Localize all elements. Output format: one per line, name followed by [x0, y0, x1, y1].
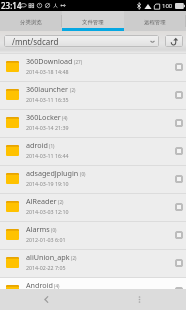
button[interactable]: adroid: [0, 137, 186, 165]
staticText: 360launcher: [26, 84, 69, 94]
button[interactable]: Alarms: [0, 221, 186, 249]
staticText: (27): [74, 59, 83, 65]
button[interactable]: adsagedJplugin: [0, 165, 186, 193]
staticText: 23:14: [1, 0, 22, 11]
staticText: (0): [80, 171, 86, 177]
staticText: (0): [51, 227, 57, 233]
button[interactable]: 分类浏览: [0, 11, 62, 31]
staticText: AlReader: [26, 196, 57, 206]
button[interactable]: Select adsagedJplugin: [170, 170, 186, 188]
staticText: /mnt/sdcard: [12, 36, 59, 47]
staticText: 文件管理: [82, 19, 104, 26]
button[interactable]: /mnt/sdcard: [4, 35, 159, 47]
staticText: 2014-03-03 12:10: [26, 208, 69, 215]
staticText: Alarms: [26, 224, 50, 234]
staticText: (4): [54, 283, 60, 289]
button[interactable]: 文件管理: [62, 11, 124, 31]
staticText: (2): [58, 199, 64, 205]
staticText: (2): [71, 255, 77, 261]
button[interactable]: Android: [0, 277, 186, 289]
button[interactable]: AlReader: [0, 193, 186, 221]
staticText: adsagedJplugin: [26, 168, 79, 178]
staticText: 2014-02-22 7:05: [26, 264, 66, 271]
button[interactable]: 360Locker: [0, 109, 186, 137]
staticText: (2): [70, 87, 76, 93]
button[interactable]: Up one level: [165, 35, 183, 47]
staticText: 360Locker: [26, 112, 61, 122]
button[interactable]: 360Download: [0, 53, 186, 81]
staticText: 2014-03-18 14:48: [26, 68, 69, 75]
staticText: 2014-03-11 16:44: [26, 152, 69, 159]
button[interactable]: 远程管理: [124, 11, 186, 31]
button[interactable]: Select Android: [170, 282, 186, 289]
staticText: 2014-03-14 21:39: [26, 124, 69, 131]
staticText: 2014-03-19 19:10: [26, 180, 69, 187]
button[interactable]: Select aliUnion_apk: [170, 254, 186, 272]
button[interactable]: aliUnion_apk: [0, 249, 186, 277]
staticText: adroid: [26, 140, 48, 150]
button[interactable]: Select 360Download: [170, 58, 186, 76]
button[interactable]: 360launcher: [0, 81, 186, 109]
staticText: (4): [62, 115, 68, 121]
button[interactable]: Back: [0, 289, 93, 310]
button[interactable]: Select 360launcher: [170, 86, 186, 104]
staticText: 2012-01-03 6:01: [26, 236, 66, 243]
staticText: 远程管理: [144, 19, 166, 26]
button[interactable]: Select 360Locker: [170, 114, 186, 132]
staticText: 360Download: [26, 56, 73, 66]
button[interactable]: Select AlReader: [170, 198, 186, 216]
staticText: 100: [162, 2, 173, 10]
staticText: 2014-03-11 16:35: [26, 96, 69, 103]
button[interactable]: Select Alarms: [170, 226, 186, 244]
button[interactable]: Select adroid: [170, 142, 186, 160]
staticText: 分类浏览: [20, 19, 42, 26]
staticText: Android: [26, 280, 53, 289]
staticText: aliUnion_apk: [26, 252, 70, 262]
staticText: (1): [49, 143, 55, 149]
